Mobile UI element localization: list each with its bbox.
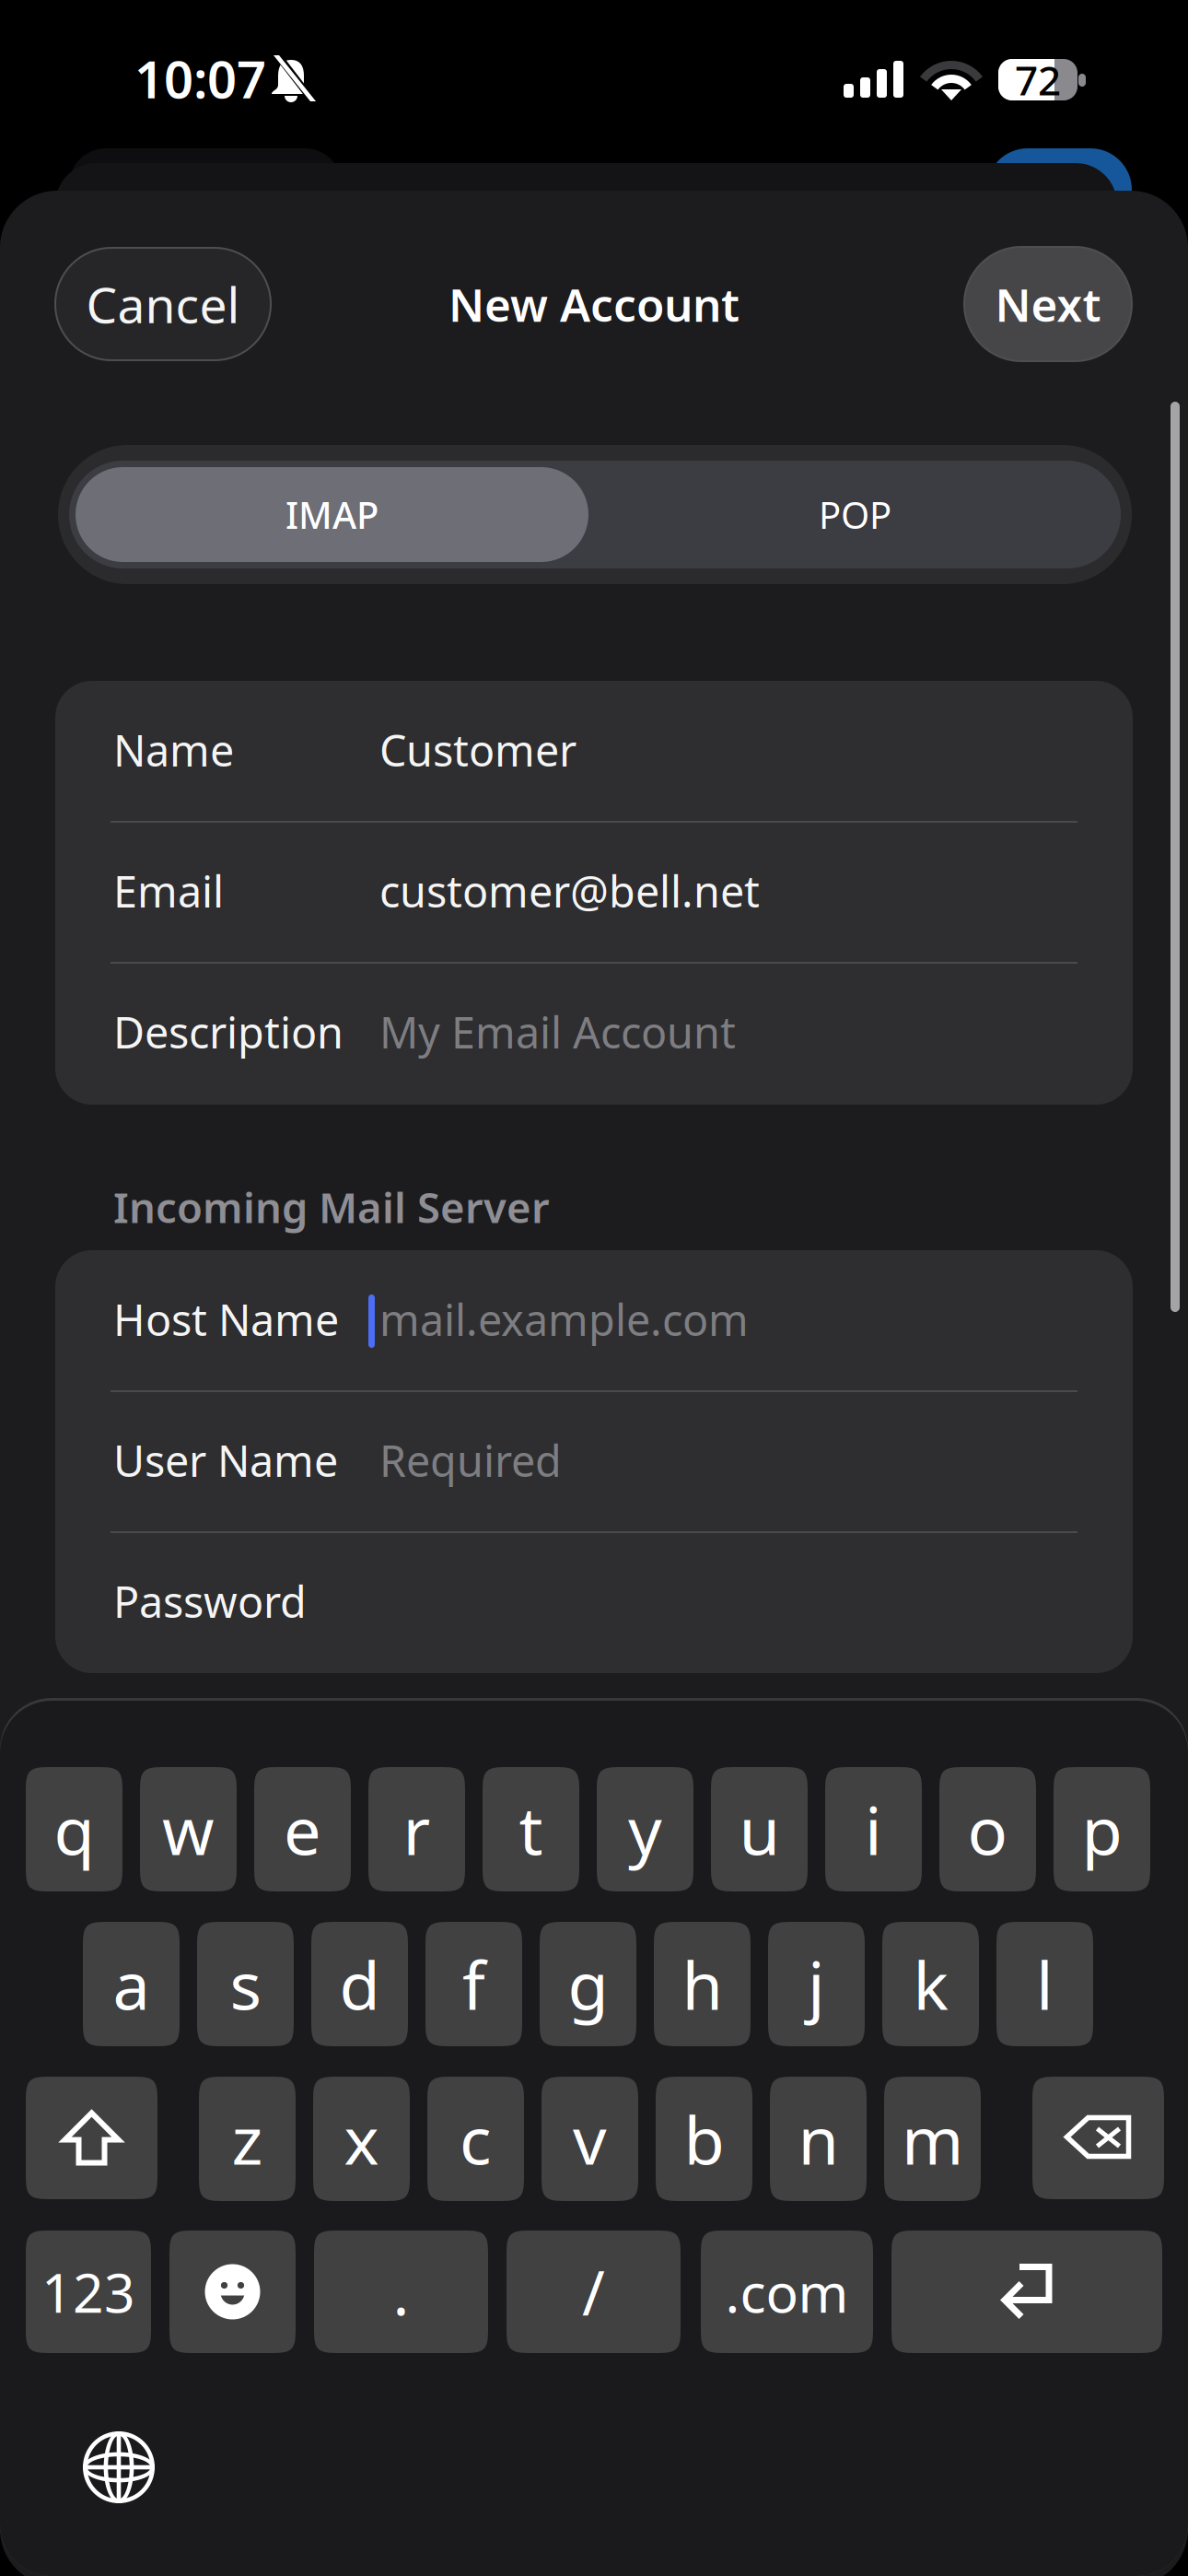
staticText: Name [113, 721, 234, 779]
button[interactable]: Period [314, 2231, 488, 2353]
button[interactable]: t [483, 1767, 579, 1891]
button[interactable]: p [1054, 1767, 1150, 1891]
button[interactable]: q [26, 1767, 122, 1891]
staticText: h [682, 1940, 722, 2028]
staticText: j [808, 1940, 825, 2028]
button[interactable]: z [199, 2077, 296, 2201]
staticText: POP [819, 490, 891, 539]
button[interactable]: u [711, 1767, 808, 1891]
button[interactable]: Next [964, 247, 1132, 361]
staticText: . [393, 2251, 409, 2332]
staticText: k [913, 1940, 948, 2028]
staticText: Incoming Mail Server [113, 1179, 550, 1235]
staticText: .com [725, 2256, 849, 2328]
button[interactable]: g [540, 1922, 636, 2046]
button[interactable]: x [313, 2077, 410, 2201]
staticText: r [403, 1785, 431, 1873]
button[interactable]: Slash [507, 2231, 681, 2353]
button[interactable]: h [654, 1922, 751, 2046]
button[interactable]: Return [891, 2231, 1162, 2353]
button[interactable]: POP [599, 467, 1112, 562]
staticText: d [339, 1940, 380, 2028]
button[interactable]: Numbers [26, 2231, 151, 2353]
staticText: User Name [113, 1432, 338, 1489]
staticText: f [462, 1940, 485, 2028]
button[interactable]: e [254, 1767, 351, 1891]
staticText: g [568, 1940, 608, 2028]
staticText: p [1082, 1785, 1122, 1873]
button[interactable]: v [542, 2077, 638, 2201]
button[interactable]: m [884, 2077, 981, 2201]
button[interactable]: l [996, 1922, 1093, 2046]
staticText: q [54, 1785, 94, 1873]
button[interactable]: k [882, 1922, 979, 2046]
button[interactable]: Delete [1032, 2077, 1164, 2199]
staticText: m [902, 2095, 963, 2183]
button[interactable]: f [425, 1922, 522, 2046]
staticText: x [344, 2095, 379, 2183]
button[interactable]: d [311, 1922, 408, 2046]
staticText: s [230, 1940, 261, 2028]
staticText: c [460, 2095, 492, 2183]
staticText: v [573, 2095, 607, 2183]
staticText: Host Name [113, 1291, 339, 1348]
staticText: Cancel [86, 271, 240, 337]
staticText: Next [995, 274, 1101, 334]
staticText: Email [113, 862, 224, 919]
button[interactable]: Emoji [169, 2231, 296, 2353]
button[interactable]: b [656, 2077, 752, 2201]
button[interactable]: dot com [701, 2231, 873, 2353]
staticText: Description [113, 1003, 344, 1060]
button[interactable]: s [197, 1922, 294, 2046]
staticText: New Account [448, 274, 740, 334]
button[interactable]: a [83, 1922, 180, 2046]
button[interactable]: o [939, 1767, 1036, 1891]
staticText: / [582, 2251, 605, 2332]
button[interactable]: Shift [26, 2077, 157, 2199]
staticText: IMAP [285, 490, 379, 539]
staticText: Required [379, 1432, 562, 1489]
staticText: i [865, 1785, 882, 1873]
button[interactable]: j [768, 1922, 865, 2046]
staticText: y [628, 1785, 662, 1873]
staticText: u [739, 1785, 780, 1873]
staticText: My Email Account [379, 1003, 736, 1060]
staticText: w [162, 1785, 215, 1873]
staticText: b [684, 2095, 724, 2183]
button[interactable]: r [368, 1767, 465, 1891]
staticText: o [967, 1785, 1008, 1873]
button[interactable]: w [140, 1767, 237, 1891]
staticText: a [113, 1940, 150, 2028]
staticText: mail.example.com [379, 1291, 749, 1348]
button[interactable]: n [770, 2077, 867, 2201]
staticText: 10:07 [134, 44, 266, 113]
button[interactable]: IMAP [76, 467, 588, 562]
staticText: l [1036, 1940, 1054, 2028]
staticText: Customer [379, 721, 577, 779]
button[interactable]: Cancel [55, 248, 271, 360]
button[interactable]: y [597, 1767, 693, 1891]
staticText: t [519, 1785, 543, 1873]
button[interactable]: c [427, 2077, 524, 2201]
staticText: 72 [1015, 53, 1061, 107]
staticText: customer@bell.net [379, 862, 760, 919]
staticText: Password [113, 1573, 307, 1630]
button[interactable]: i [825, 1767, 922, 1891]
staticText: n [798, 2095, 839, 2183]
staticText: z [232, 2095, 263, 2183]
staticText: 123 [41, 2256, 135, 2328]
staticText: e [284, 1785, 321, 1873]
